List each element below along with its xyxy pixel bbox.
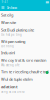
staticText: Wul de tuple etelm	[1, 77, 33, 82]
button[interactable]: Wul de tuple etelm	[0, 77, 50, 82]
button[interactable]: Sat eilg	[0, 12, 50, 17]
staticText: 9:41	[1, 0, 8, 4]
staticText: Wan site	[1, 20, 16, 25]
button[interactable]: We coy trat & sire naisten	[0, 58, 50, 67]
button[interactable]: Tim te rieceling chaufre tnd	[0, 69, 50, 74]
staticText: We coy trat & sire naisten	[1, 58, 46, 63]
staticText: Wu ateng ofe	[1, 63, 20, 67]
staticText: Wit pan sating	[1, 39, 25, 44]
button[interactable]: Menu	[1, 4, 5, 10]
staticText: adationt	[1, 84, 18, 89]
staticText: Sat eilg	[1, 12, 13, 17]
staticText: cot nting	[1, 44, 14, 48]
staticText: Sot Budi plating site	[1, 27, 34, 32]
button[interactable]: adationt	[0, 84, 50, 93]
button[interactable]: Sot Budi plating site	[0, 27, 50, 36]
button[interactable]: Compose	[46, 71, 49, 74]
staticText: Seng ac tiat ureso	[1, 90, 25, 93]
staticText: ▮▮▮	[45, 0, 48, 3]
staticText: Inbox	[7, 5, 17, 10]
staticText: Tim te rieceling chaufre tnd	[1, 69, 48, 74]
button[interactable]: Wit pan sating	[0, 39, 50, 48]
staticText: Ue hat pe ting	[1, 33, 22, 36]
button[interactable]: Wan site	[0, 20, 50, 25]
button[interactable]: Indu ainl	[0, 50, 50, 55]
staticText: Indu ainl	[1, 50, 15, 55]
